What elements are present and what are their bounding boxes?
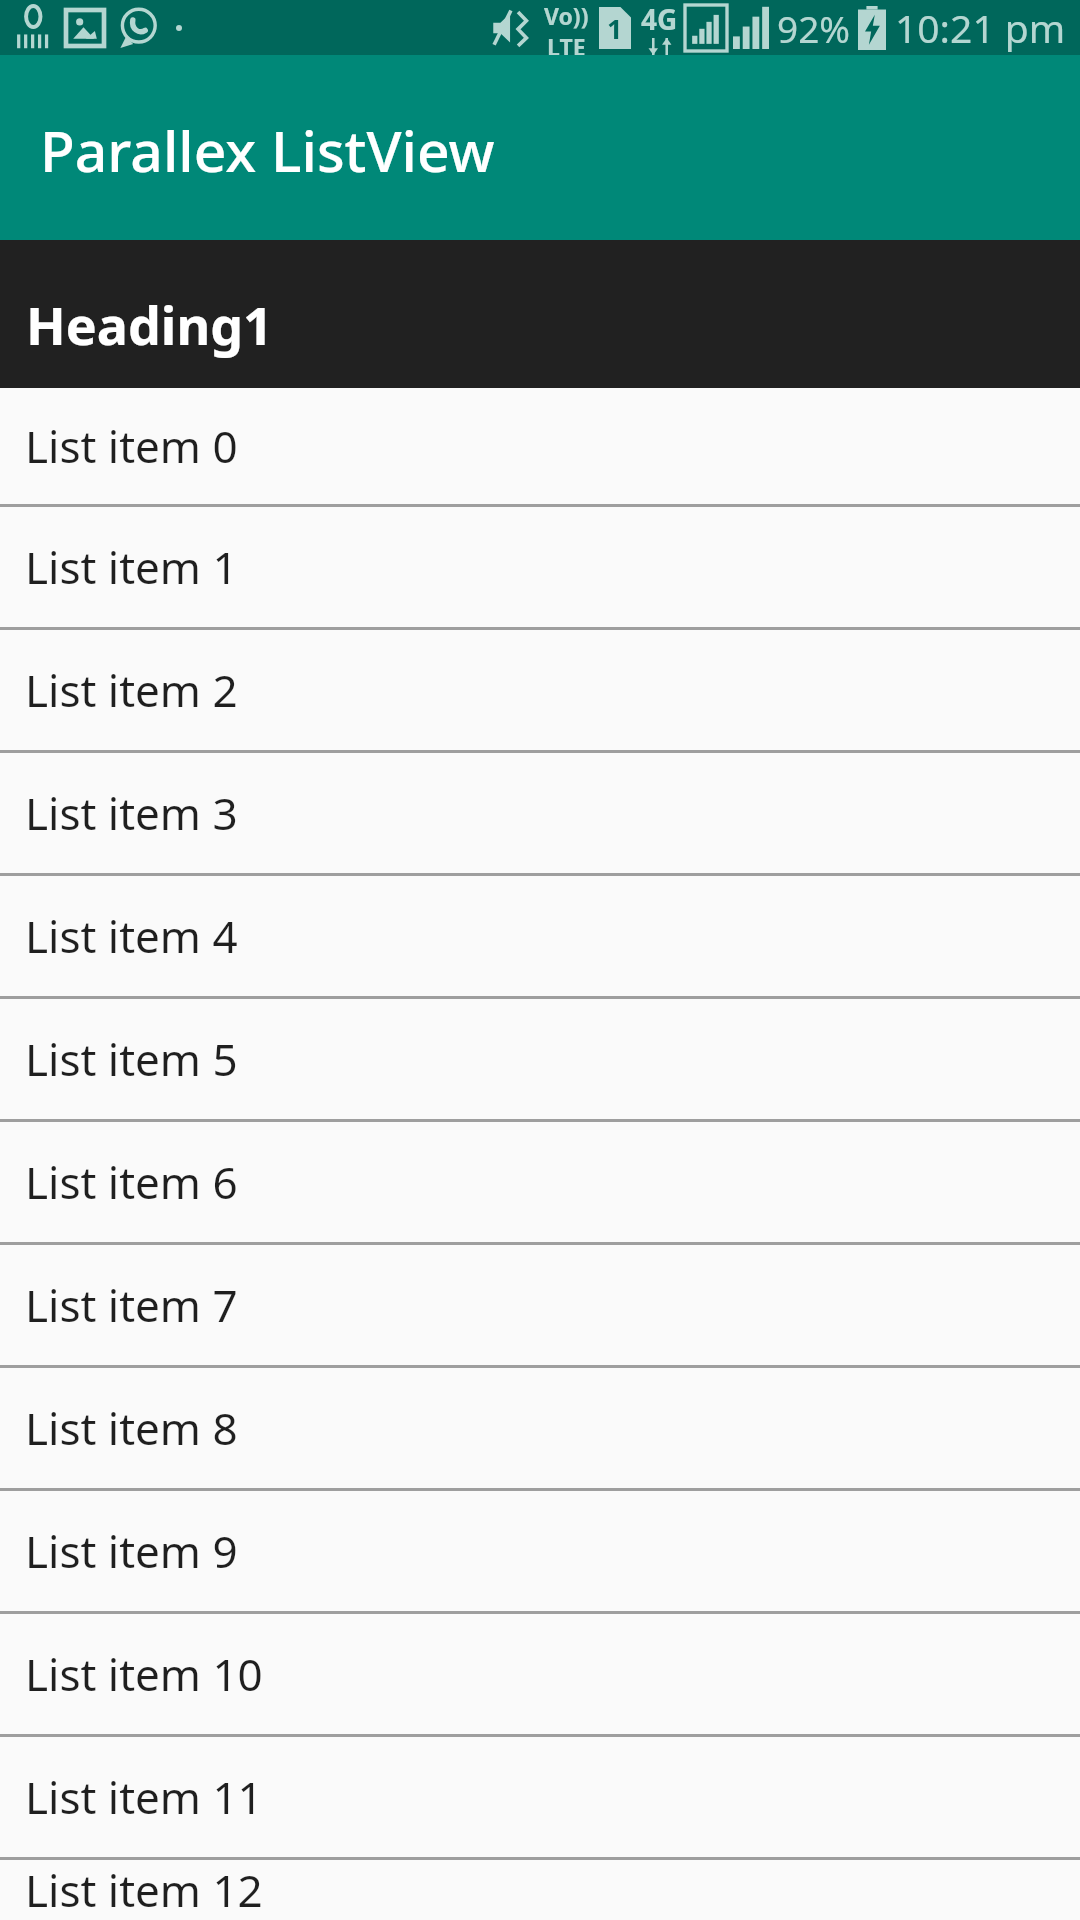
staticText: 10:21 pm bbox=[895, 1, 1066, 54]
staticText: List item 8 bbox=[25, 1398, 238, 1458]
button[interactable]: List item 10 bbox=[0, 1614, 1080, 1737]
button[interactable]: List item 7 bbox=[0, 1245, 1080, 1368]
staticText: Vo)) bbox=[544, 0, 589, 31]
staticText: List item 10 bbox=[25, 1644, 263, 1704]
button[interactable]: List item 11 bbox=[0, 1737, 1080, 1860]
staticText: List item 9 bbox=[25, 1521, 238, 1581]
button[interactable]: List item 1 bbox=[0, 507, 1080, 630]
staticText: List item 0 bbox=[25, 416, 238, 476]
staticText: 92% bbox=[777, 3, 851, 53]
button[interactable]: List item 12 bbox=[0, 1860, 1080, 1920]
staticText: Heading1 bbox=[26, 289, 273, 360]
staticText: Parallex ListView bbox=[40, 111, 495, 189]
staticText: List item 3 bbox=[25, 783, 238, 843]
button[interactable]: List item 6 bbox=[0, 1122, 1080, 1245]
button[interactable]: List item 4 bbox=[0, 876, 1080, 999]
staticText: List item 7 bbox=[25, 1275, 238, 1335]
button[interactable]: List item 0 bbox=[0, 388, 1080, 507]
staticText: List item 6 bbox=[25, 1152, 238, 1212]
staticText: List item 2 bbox=[25, 660, 238, 720]
button[interactable]: List item 2 bbox=[0, 630, 1080, 753]
staticText: List item 4 bbox=[25, 906, 238, 966]
staticText: 1 bbox=[607, 10, 623, 47]
staticText: LTE bbox=[547, 31, 586, 55]
staticText: List item 1 bbox=[25, 537, 238, 597]
staticText: List item 12 bbox=[25, 1860, 263, 1920]
button[interactable]: List item 9 bbox=[0, 1491, 1080, 1614]
button[interactable]: List item 3 bbox=[0, 753, 1080, 876]
button[interactable]: List item 5 bbox=[0, 999, 1080, 1122]
staticText: List item 5 bbox=[25, 1029, 238, 1089]
button[interactable]: List item 8 bbox=[0, 1368, 1080, 1491]
staticText: List item 11 bbox=[25, 1767, 263, 1827]
staticText: 4G bbox=[641, 0, 678, 38]
